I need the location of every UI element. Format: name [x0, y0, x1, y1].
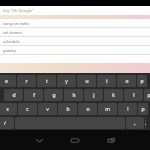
- button[interactable]: schedule: [0, 37, 150, 46]
- staticText: /: [4, 120, 6, 127]
- button[interactable]: g: [44, 89, 63, 101]
- button[interactable]: Back: [28, 136, 50, 145]
- staticText: j: [93, 92, 95, 99]
- staticText: b: [66, 106, 70, 113]
- staticText: c: [26, 106, 29, 113]
- button[interactable]: p: [138, 103, 148, 115]
- staticText: n: [86, 106, 90, 113]
- staticText: e: [5, 78, 8, 85]
- staticText: schedule: [3, 39, 20, 44]
- button[interactable]: set timers: [0, 28, 150, 37]
- button[interactable]: o: [117, 75, 136, 87]
- staticText: x: [6, 106, 9, 113]
- button[interactable]: Say "Ok Google": [0, 6, 150, 15]
- button[interactable]: d: [4, 89, 23, 101]
- button[interactable]: j: [84, 89, 103, 101]
- button[interactable]: gravity: [0, 46, 150, 55]
- button[interactable]: r: [17, 75, 36, 87]
- staticText: i: [106, 78, 108, 85]
- staticText: Say "Ok Google": [3, 8, 34, 13]
- staticText: song on radio: [3, 21, 29, 26]
- staticText: y: [65, 78, 68, 85]
- button[interactable]: x: [0, 103, 17, 115]
- button[interactable]: u: [77, 75, 96, 87]
- button[interactable]: y: [57, 75, 76, 87]
- staticText: ,: [134, 120, 136, 127]
- staticText: p: [147, 92, 150, 99]
- button[interactable]: /: [0, 117, 14, 129]
- button[interactable]: f: [24, 89, 43, 101]
- button[interactable]: p: [144, 89, 150, 101]
- button[interactable]: n: [78, 103, 97, 115]
- staticText: u: [85, 78, 89, 85]
- staticText: !: [127, 106, 129, 113]
- staticText: k: [112, 92, 115, 99]
- staticText: p: [140, 78, 144, 85]
- button[interactable]: k: [104, 89, 123, 101]
- button[interactable]: h: [64, 89, 83, 101]
- staticText: r: [25, 78, 28, 85]
- staticText: v: [46, 106, 49, 113]
- button[interactable]: c: [18, 103, 37, 115]
- button[interactable]: !: [118, 103, 137, 115]
- button[interactable]: Recent apps: [100, 136, 122, 145]
- staticText: d: [12, 92, 16, 99]
- staticText: g: [52, 92, 56, 99]
- button[interactable]: song on radio: [0, 19, 150, 28]
- button[interactable]: p: [137, 75, 147, 87]
- button[interactable]: .: [145, 117, 146, 129]
- button[interactable]: Home: [64, 136, 86, 145]
- button[interactable]: ,: [126, 117, 144, 129]
- button[interactable]: m: [98, 103, 117, 115]
- button[interactable]: e: [0, 75, 16, 87]
- staticText: .: [145, 120, 146, 127]
- staticText: p: [141, 106, 145, 113]
- staticText: m: [105, 106, 110, 113]
- staticText: o: [125, 78, 129, 85]
- staticText: h: [72, 92, 76, 99]
- staticText: t: [46, 78, 48, 85]
- button[interactable]: i: [97, 75, 116, 87]
- staticText: set timers: [3, 30, 22, 35]
- staticText: f: [33, 92, 35, 99]
- staticText: l: [133, 92, 135, 99]
- button[interactable]: t: [37, 75, 56, 87]
- button[interactable]: v: [38, 103, 57, 115]
- staticText: gravity: [3, 48, 16, 53]
- button[interactable]: b: [58, 103, 77, 115]
- button[interactable]: l: [124, 89, 143, 101]
